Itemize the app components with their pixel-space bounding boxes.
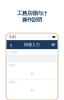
staticText: +	[30, 69, 34, 78]
staticText: お名前	[9, 50, 18, 53]
staticText: ≡	[51, 42, 55, 48]
staticText: 工務店様向け	[17, 10, 47, 17]
staticText: ‹	[10, 40, 12, 49]
staticText: 情報入力	[24, 42, 40, 47]
button[interactable]: Add photo	[6, 68, 58, 79]
button[interactable]: Back	[8, 41, 14, 49]
staticText: 写真1	[9, 63, 17, 67]
button[interactable]: Add photo	[6, 85, 58, 96]
staticText: ▮▮▮	[52, 35, 55, 38]
staticText: 9:41	[9, 34, 16, 39]
staticText: 操作説明	[22, 17, 42, 23]
button[interactable]: Menu	[50, 41, 56, 49]
staticText: +	[30, 86, 34, 95]
staticText: 写真2	[9, 80, 17, 84]
